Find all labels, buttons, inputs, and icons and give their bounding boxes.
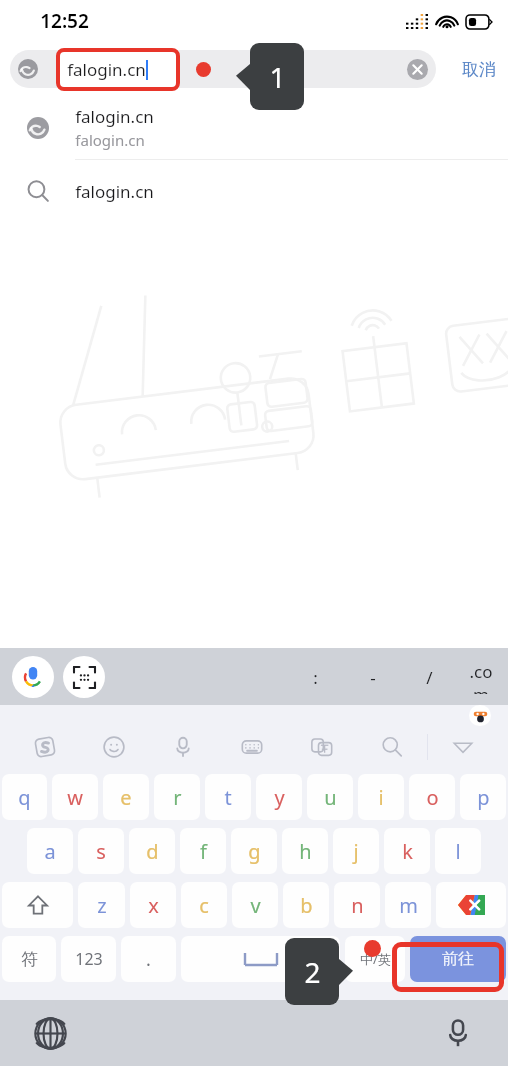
staticText: g: [248, 838, 261, 865]
staticText: b: [300, 892, 313, 919]
button[interactable]: p: [460, 774, 506, 820]
button[interactable]: d: [129, 828, 175, 874]
staticText: 中/英: [360, 950, 391, 968]
staticText: :: [313, 666, 318, 689]
button[interactable]: .com: [468, 660, 494, 694]
button[interactable]: [10, 726, 79, 767]
button[interactable]: f: [180, 828, 226, 874]
staticText: v: [250, 892, 261, 919]
button[interactable]: z: [78, 882, 125, 928]
button[interactable]: [287, 726, 357, 767]
staticText: /: [426, 666, 433, 689]
button[interactable]: 取消: [462, 59, 496, 80]
button[interactable]: -: [360, 660, 386, 694]
button[interactable]: i: [358, 774, 404, 820]
button[interactable]: /: [416, 660, 442, 694]
button[interactable]: m: [385, 882, 431, 928]
staticText: q: [18, 784, 31, 811]
staticText: l: [455, 838, 461, 865]
button[interactable]: Clear: [10, 50, 436, 88]
button[interactable]: k: [384, 828, 430, 874]
button[interactable]: .: [121, 936, 176, 982]
staticText: h: [299, 838, 312, 865]
button[interactable]: b: [283, 882, 329, 928]
staticText: z: [97, 892, 107, 919]
button[interactable]: v: [232, 882, 278, 928]
staticText: 123: [75, 948, 103, 970]
button[interactable]: a: [27, 828, 73, 874]
button[interactable]: [79, 726, 148, 767]
button[interactable]: e: [103, 774, 149, 820]
staticText: f: [200, 838, 207, 865]
button[interactable]: n: [334, 882, 380, 928]
button[interactable]: Delete: [436, 882, 506, 928]
staticText: falogin.cn: [75, 130, 145, 150]
staticText: 2: [304, 953, 321, 991]
button[interactable]: r: [154, 774, 200, 820]
button[interactable]: 中/英: [345, 936, 405, 982]
button[interactable]: Voice input: [438, 1013, 478, 1053]
staticText: o: [426, 784, 439, 811]
button[interactable]: j: [333, 828, 379, 874]
staticText: n: [351, 892, 364, 919]
staticText: 1: [269, 58, 286, 96]
button[interactable]: Switch language: [30, 1013, 70, 1053]
staticText: s: [96, 838, 106, 865]
button[interactable]: s: [78, 828, 124, 874]
button[interactable]: g: [231, 828, 277, 874]
button[interactable]: 符: [2, 936, 56, 982]
staticText: c: [199, 892, 209, 919]
staticText: w: [67, 784, 83, 811]
staticText: e: [120, 784, 132, 811]
staticText: r: [173, 784, 182, 811]
button[interactable]: c: [181, 882, 227, 928]
button[interactable]: falogin.cn: [60, 52, 176, 87]
staticText: t: [224, 784, 232, 811]
staticText: 前往: [442, 949, 474, 969]
button[interactable]: Assistant: [469, 705, 491, 726]
button[interactable]: Clear: [407, 59, 428, 80]
staticText: p: [477, 784, 490, 811]
button[interactable]: l: [435, 828, 481, 874]
button[interactable]: h: [282, 828, 328, 874]
button[interactable]: o: [409, 774, 455, 820]
staticText: k: [402, 838, 413, 865]
button[interactable]: u: [307, 774, 353, 820]
button[interactable]: :: [302, 660, 328, 694]
staticText: 符: [21, 949, 38, 970]
staticText: x: [148, 892, 159, 919]
button[interactable]: q: [2, 774, 47, 820]
staticText: falogin.cn: [67, 58, 146, 81]
button[interactable]: Voice search: [12, 656, 54, 698]
button[interactable]: falogin.cn: [0, 96, 508, 159]
staticText: .: [146, 947, 151, 972]
staticText: j: [353, 838, 359, 865]
button[interactable]: Shift: [2, 882, 73, 928]
button[interactable]: Space: [181, 936, 340, 982]
button[interactable]: 123: [61, 936, 116, 982]
staticText: d: [146, 838, 159, 865]
button[interactable]: [357, 726, 427, 767]
button[interactable]: y: [256, 774, 302, 820]
button[interactable]: w: [52, 774, 98, 820]
staticText: falogin.cn: [75, 180, 154, 203]
button[interactable]: falogin.cn: [0, 160, 508, 222]
staticText: y: [274, 784, 285, 811]
staticText: 12:52: [40, 8, 89, 34]
staticText: u: [324, 784, 337, 811]
staticText: a: [44, 838, 56, 865]
staticText: .com: [468, 660, 494, 694]
staticText: -: [370, 666, 376, 689]
button[interactable]: 前往: [410, 936, 506, 982]
button[interactable]: [217, 726, 287, 767]
button[interactable]: Scan code: [63, 656, 105, 698]
staticText: i: [378, 784, 384, 811]
button[interactable]: [148, 726, 217, 767]
staticText: m: [399, 892, 418, 919]
button[interactable]: t: [205, 774, 251, 820]
staticText: falogin.cn: [75, 105, 154, 128]
button[interactable]: x: [130, 882, 176, 928]
button[interactable]: [428, 726, 498, 767]
